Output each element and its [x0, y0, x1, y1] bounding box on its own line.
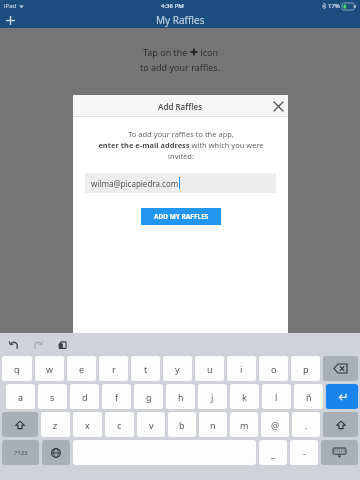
- staticText: 4:36 PM: [161, 2, 184, 10]
- button[interactable]: u: [195, 356, 224, 381]
- button[interactable]: Return: [326, 384, 358, 409]
- button[interactable]: f: [102, 384, 131, 409]
- button[interactable]: y: [163, 356, 192, 381]
- button[interactable]: Change keyboard: [42, 440, 70, 465]
- button[interactable]: k: [230, 384, 259, 409]
- button[interactable]: .: [292, 412, 320, 437]
- staticText: w: [46, 363, 54, 375]
- staticText: j: [211, 391, 214, 403]
- button[interactable]: Close: [268, 96, 288, 116]
- staticText: icon: [198, 46, 218, 58]
- staticText: My Raffles: [156, 13, 205, 27]
- button[interactable]: @: [261, 412, 289, 437]
- button[interactable]: n: [199, 412, 227, 437]
- staticText: ADD MY RAFFLES: [154, 212, 209, 221]
- staticText: Add Raffles: [158, 101, 203, 112]
- staticText: p: [303, 363, 309, 375]
- button[interactable]: .?123: [2, 440, 39, 465]
- button[interactable]: a: [6, 384, 35, 409]
- staticText: iPad: [4, 2, 17, 10]
- staticText: o: [271, 363, 277, 375]
- staticText: q: [14, 363, 20, 375]
- staticText: 17%: [328, 2, 340, 10]
- button[interactable]: _: [259, 440, 287, 465]
- button[interactable]: Paste: [55, 338, 69, 352]
- button[interactable]: -: [290, 440, 318, 465]
- button[interactable]: t: [131, 356, 160, 381]
- staticText: t: [144, 363, 148, 375]
- staticText: .: [305, 419, 308, 431]
- staticText: ñ: [306, 391, 312, 403]
- staticText: f: [115, 391, 119, 403]
- staticText: v: [149, 419, 154, 431]
- button[interactable]: z: [41, 412, 70, 437]
- staticText: b: [179, 419, 185, 431]
- button[interactable]: v: [137, 412, 165, 437]
- button[interactable]: p: [291, 356, 320, 381]
- button[interactable]: m: [230, 412, 258, 437]
- button[interactable]: s: [38, 384, 67, 409]
- button[interactable]: x: [73, 412, 102, 437]
- button[interactable]: q: [2, 356, 32, 381]
- staticText: r: [112, 363, 116, 375]
- button[interactable]: r: [99, 356, 128, 381]
- button[interactable]: h: [166, 384, 195, 409]
- staticText: a: [18, 391, 24, 403]
- button[interactable]: i: [227, 356, 256, 381]
- button[interactable]: e: [67, 356, 96, 381]
- button[interactable]: g: [134, 384, 163, 409]
- staticText: .?123: [13, 449, 28, 457]
- staticText: s: [50, 391, 55, 403]
- button[interactable]: wilma@picapiedra.com: [85, 173, 276, 193]
- staticText: Tap on the: [143, 46, 190, 58]
- staticText: -: [303, 447, 306, 459]
- staticText: to add your raffles.: [140, 61, 221, 73]
- button[interactable]: Backspace: [323, 356, 358, 381]
- button[interactable]: ñ: [294, 384, 323, 409]
- button[interactable]: Shift: [323, 412, 358, 437]
- button[interactable]: b: [168, 412, 196, 437]
- staticText: @: [271, 419, 280, 431]
- button[interactable]: j: [198, 384, 227, 409]
- staticText: c: [117, 419, 122, 431]
- button[interactable]: Hide keyboard: [321, 440, 358, 465]
- staticText: x: [85, 419, 90, 431]
- staticText: i: [240, 363, 243, 375]
- button[interactable]: d: [70, 384, 99, 409]
- staticText: m: [240, 419, 249, 431]
- staticText: g: [146, 391, 152, 403]
- staticText: _: [271, 447, 275, 459]
- button[interactable]: w: [35, 356, 64, 381]
- staticText: u: [207, 363, 213, 375]
- staticText: To add your raffles to the app, enter th…: [98, 129, 264, 161]
- staticText: e: [79, 363, 85, 375]
- staticText: wilma@picapiedra.com: [91, 178, 179, 189]
- staticText: h: [178, 391, 184, 403]
- button[interactable]: ADD MY RAFFLES: [141, 208, 221, 225]
- staticText: k: [242, 391, 247, 403]
- staticText: z: [53, 419, 58, 431]
- staticText: y: [175, 363, 180, 375]
- button[interactable]: c: [105, 412, 134, 437]
- button[interactable]: Redo: [31, 338, 45, 352]
- staticText: l: [275, 391, 278, 403]
- button[interactable]: l: [262, 384, 291, 409]
- button[interactable]: Add raffle: [0, 12, 20, 28]
- button[interactable]: o: [259, 356, 288, 381]
- button[interactable]: Undo: [7, 338, 21, 352]
- button[interactable]: Shift: [2, 412, 38, 437]
- staticText: d: [82, 391, 88, 403]
- staticText: n: [210, 419, 216, 431]
